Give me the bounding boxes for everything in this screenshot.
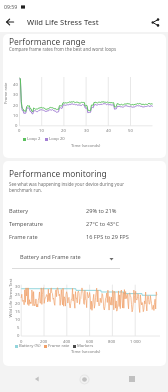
- staticText: Frame rate: [48, 343, 70, 349]
- staticText: 0: [20, 339, 23, 345]
- staticText: 0: [17, 333, 20, 339]
- staticText: 1 000: [130, 339, 141, 345]
- staticText: Battery: [9, 207, 29, 215]
- staticText: 16 FPS to 29 FPS: [86, 233, 129, 241]
- button[interactable]: Frame rate: [3, 232, 166, 241]
- staticText: 0: [18, 128, 21, 134]
- staticText: 20: [13, 103, 18, 109]
- staticText: 10: [39, 128, 44, 134]
- staticText: 400: [63, 339, 71, 345]
- staticText: Performance range: [9, 36, 86, 47]
- staticText: Wild Life Stress Test: [7, 278, 13, 317]
- staticText: 30: [84, 128, 89, 134]
- staticText: 10: [15, 317, 20, 323]
- staticText: Temperature: [9, 220, 43, 228]
- staticText: 27°C to 43°C: [86, 220, 119, 228]
- staticText: Loop 20: [49, 136, 65, 142]
- staticText: 25: [15, 292, 20, 298]
- staticText: 600: [86, 339, 94, 345]
- staticText: Time (seconds): [71, 143, 101, 149]
- staticText: Battery (%): [19, 343, 41, 349]
- staticText: 0: [15, 123, 18, 129]
- staticText: 40: [106, 128, 111, 134]
- staticText: 10: [13, 113, 18, 119]
- staticText: Markers: [77, 343, 94, 349]
- button[interactable]: Back: [0, 12, 20, 32]
- staticText: Wild Life Stress Test: [27, 17, 99, 27]
- button[interactable]: Share: [145, 12, 165, 32]
- button[interactable]: Recents: [121, 368, 143, 390]
- staticText: Time (seconds): [71, 349, 101, 355]
- button[interactable]: Home: [73, 368, 95, 390]
- staticText: Loop 2: [27, 136, 41, 142]
- staticText: 30: [13, 92, 18, 98]
- staticText: Compare frame rates from the best and wo…: [9, 46, 117, 52]
- button[interactable]: Battery: [3, 206, 166, 215]
- staticText: 800: [108, 339, 116, 345]
- staticText: 40: [13, 82, 18, 88]
- staticText: 20: [15, 301, 20, 307]
- button[interactable]: Back: [26, 368, 48, 390]
- staticText: 5: [17, 325, 20, 331]
- staticText: Frame rate: [9, 233, 38, 241]
- staticText: Battery and Frame rate: [20, 253, 81, 261]
- button[interactable]: Battery and Frame rate: [12, 250, 120, 258]
- staticText: 20: [61, 128, 66, 134]
- staticText: Frame rate: [3, 82, 9, 104]
- button[interactable]: Temperature: [3, 219, 166, 228]
- staticText: 50: [128, 128, 133, 134]
- staticText: 200: [40, 339, 48, 345]
- staticText: 09:59: [4, 3, 18, 10]
- staticText: 29% to 21%: [86, 207, 117, 215]
- staticText: 15: [15, 309, 20, 315]
- staticText: Performance monitoring: [9, 168, 107, 179]
- staticText: 30: [15, 284, 20, 290]
- staticText: See what was happening inside your devic…: [9, 181, 145, 193]
